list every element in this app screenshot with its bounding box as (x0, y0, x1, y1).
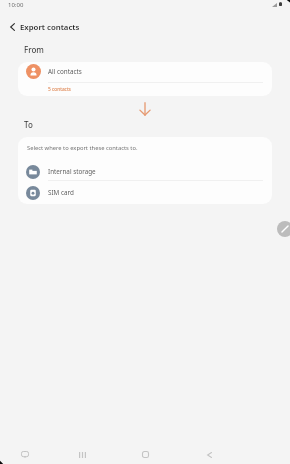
staticText: From (24, 44, 44, 55)
staticText: SIM card (48, 188, 74, 197)
button[interactable]: SIM card (18, 182, 272, 204)
staticText: To (24, 119, 33, 130)
button[interactable]: Navigate up (1, 16, 23, 38)
staticText: 5 contacts (48, 86, 71, 93)
button[interactable]: Edge panel handle (277, 221, 290, 237)
button[interactable]: Recent apps (69, 441, 96, 464)
staticText: Export contacts (20, 22, 80, 33)
staticText: Select where to export these contacts to… (27, 144, 138, 152)
button[interactable]: Internal storage (18, 161, 272, 183)
button[interactable]: Hide keyboard (11, 441, 38, 464)
button[interactable]: Back (196, 441, 223, 464)
staticText: 10:00 (8, 1, 24, 9)
button[interactable]: All contacts (18, 62, 272, 81)
button[interactable]: Home (132, 441, 159, 464)
staticText: All contacts (48, 67, 82, 76)
staticText: Internal storage (48, 167, 96, 176)
